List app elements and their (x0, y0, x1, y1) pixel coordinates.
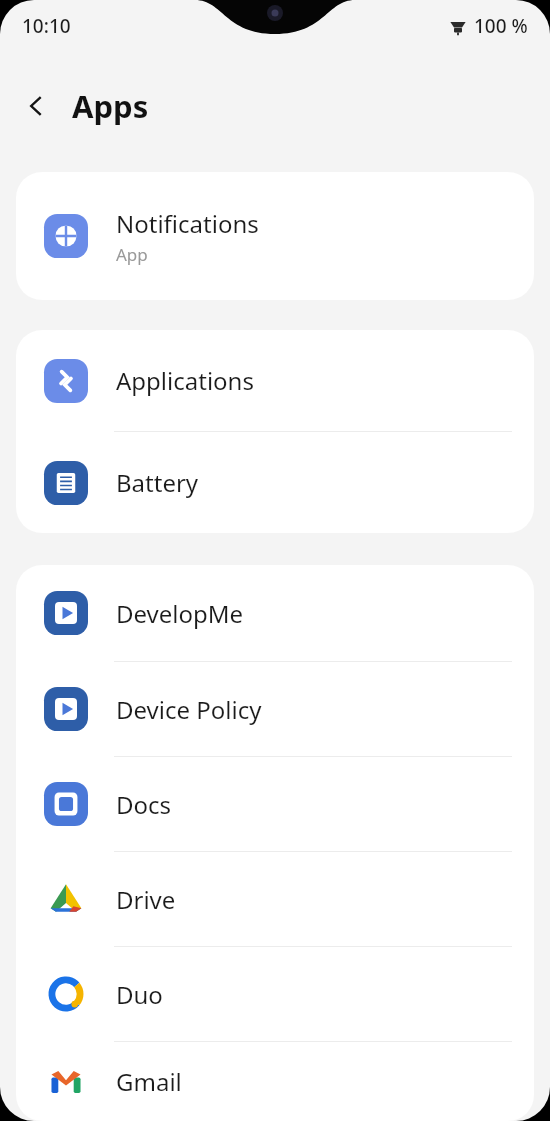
button[interactable]: Device Policy (16, 662, 534, 756)
staticText: Battery (116, 466, 199, 499)
staticText: 10:10 (22, 13, 71, 39)
staticText: App (116, 243, 148, 266)
staticText: DevelopMe (116, 597, 244, 630)
staticText: 100 % (474, 13, 528, 39)
button[interactable]: Duo (16, 947, 534, 1041)
button[interactable]: Battery (16, 432, 534, 533)
button[interactable]: Docs (16, 757, 534, 851)
staticText: Drive (116, 883, 176, 916)
staticText: Notifications (116, 207, 259, 240)
button[interactable]: Notifications (16, 172, 534, 300)
staticText: Docs (116, 788, 172, 821)
button[interactable]: Gmail (16, 1042, 534, 1121)
button[interactable]: Back (14, 84, 58, 128)
staticText: Duo (116, 978, 163, 1011)
staticText: Gmail (116, 1065, 182, 1098)
button[interactable]: DevelopMe (16, 565, 534, 661)
staticText: Device Policy (116, 693, 262, 726)
staticText: Applications (116, 364, 254, 397)
button[interactable]: Applications (16, 330, 534, 431)
button[interactable]: Drive (16, 852, 534, 946)
staticText: Apps (72, 85, 149, 127)
